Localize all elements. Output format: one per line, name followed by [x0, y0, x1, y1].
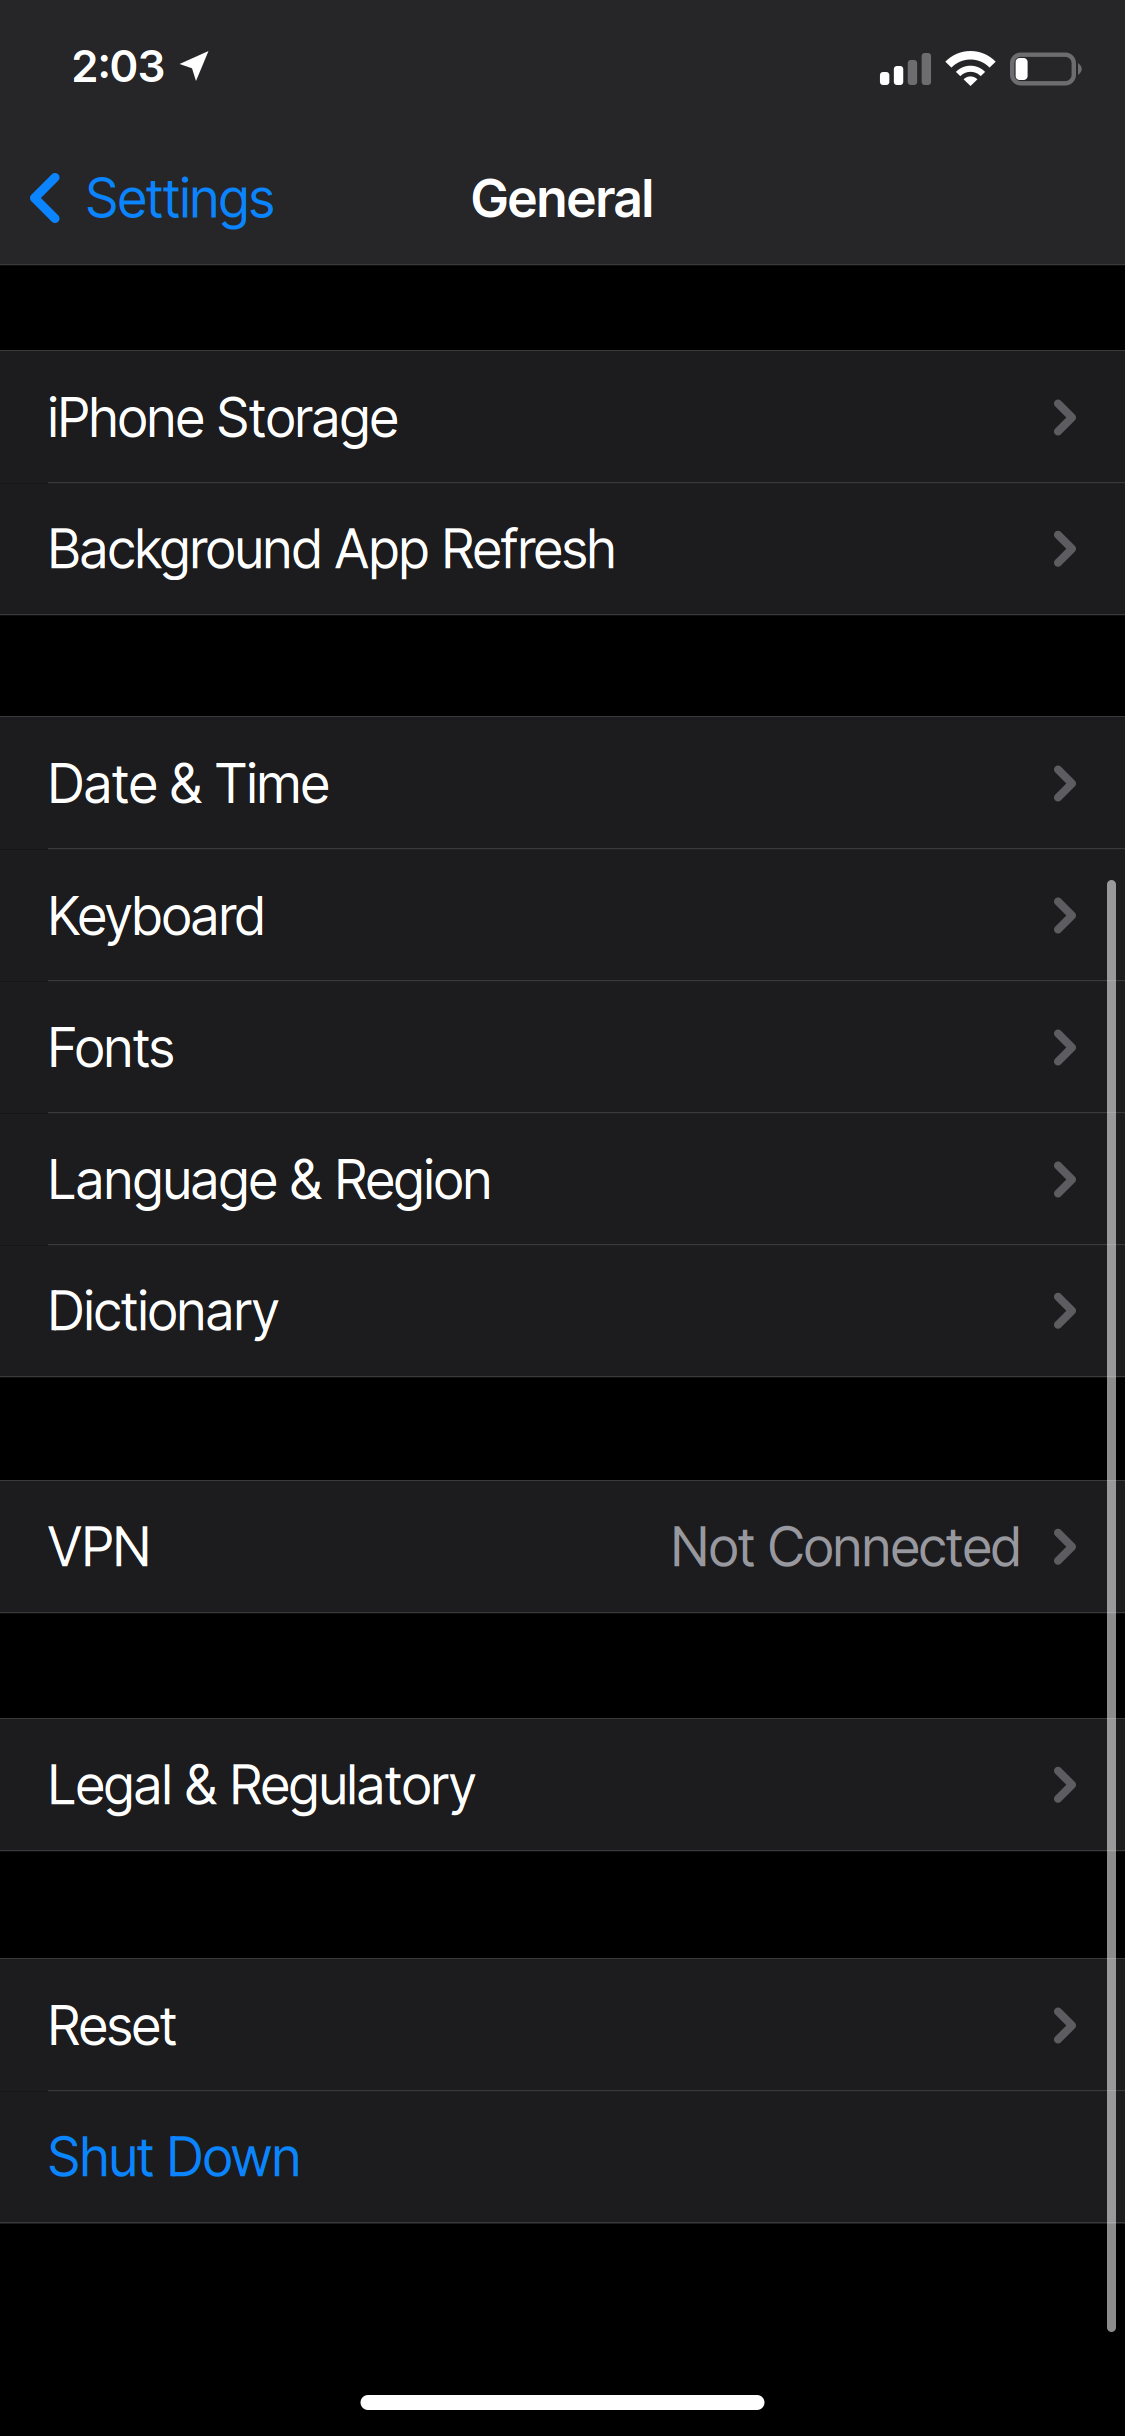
staticText: Dictionary — [48, 1278, 279, 1343]
button[interactable]: Date & Time — [0, 717, 1125, 849]
staticText: Language & Region — [48, 1147, 492, 1212]
staticText: Not Connected — [671, 1514, 1021, 1579]
button[interactable]: Dictionary — [0, 1245, 1125, 1376]
staticText: General — [471, 166, 654, 229]
button[interactable]: Language & Region — [0, 1113, 1125, 1245]
button[interactable]: Back to Settings — [0, 132, 296, 264]
button[interactable]: Legal & Regulatory — [0, 1719, 1125, 1850]
staticText: VPN — [48, 1514, 151, 1579]
button[interactable]: VPN — [0, 1481, 1125, 1612]
staticText: Shut Down — [48, 2124, 301, 2189]
button[interactable]: Keyboard — [0, 849, 1125, 981]
staticText: Fonts — [48, 1015, 174, 1080]
button[interactable]: Fonts — [0, 981, 1125, 1113]
staticText: Date & Time — [48, 751, 329, 816]
staticText: Settings — [86, 166, 274, 230]
staticText: Background App Refresh — [48, 516, 616, 581]
staticText: 2:03 — [72, 39, 165, 93]
staticText: Legal & Regulatory — [48, 1752, 476, 1817]
button[interactable]: iPhone Storage — [0, 351, 1125, 483]
button[interactable]: Background App Refresh — [0, 483, 1125, 614]
staticText: Reset — [48, 1993, 177, 2058]
button[interactable]: Shut Down — [0, 2091, 1125, 2222]
staticText: Keyboard — [48, 883, 265, 948]
button[interactable]: Reset — [0, 1959, 1125, 2091]
staticText: iPhone Storage — [48, 385, 398, 450]
